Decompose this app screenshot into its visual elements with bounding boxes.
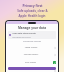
staticText: Sync status <box>8 61 53 64</box>
staticText: Upload history <box>8 53 54 56</box>
button[interactable]: Apple Health <box>8 45 56 50</box>
staticText: Manage your data <box>8 26 56 30</box>
staticText: Apple Health <box>8 46 54 49</box>
button[interactable]: Your data stays private <box>8 31 56 39</box>
staticText: Your data stays private <box>12 32 36 35</box>
other: Connected <box>53 61 56 64</box>
staticText: Encrypted end to end <box>12 36 31 38</box>
button[interactable]: Review permissions <box>8 67 56 70</box>
button[interactable]: Sync status <box>8 60 56 65</box>
staticText: Privacy first <box>22 3 43 8</box>
button[interactable]: Upload history <box>8 52 56 57</box>
staticText: Apple Health login <box>18 14 46 18</box>
staticText: Connected sources <box>8 40 56 43</box>
staticText: Safe uploads, clear & <box>17 9 48 13</box>
